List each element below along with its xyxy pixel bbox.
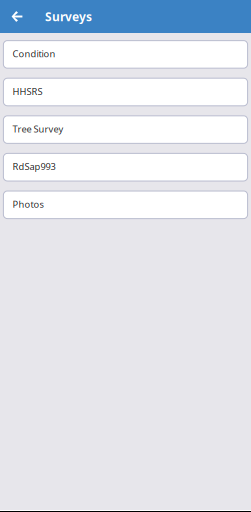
button[interactable]: Tree Survey [3, 116, 248, 143]
staticText: HHSRS [13, 85, 43, 97]
staticText: Surveys [45, 8, 92, 24]
button[interactable]: RdSap993 [3, 153, 248, 181]
button[interactable]: Photos [3, 191, 248, 219]
staticText: Photos [13, 198, 44, 210]
button[interactable]: Condition [3, 41, 248, 68]
staticText: RdSap993 [13, 160, 56, 173]
button[interactable]: Back [6, 0, 28, 32]
staticText: Tree Survey [13, 123, 64, 135]
button[interactable]: HHSRS [3, 78, 248, 106]
staticText: Condition [13, 47, 56, 60]
